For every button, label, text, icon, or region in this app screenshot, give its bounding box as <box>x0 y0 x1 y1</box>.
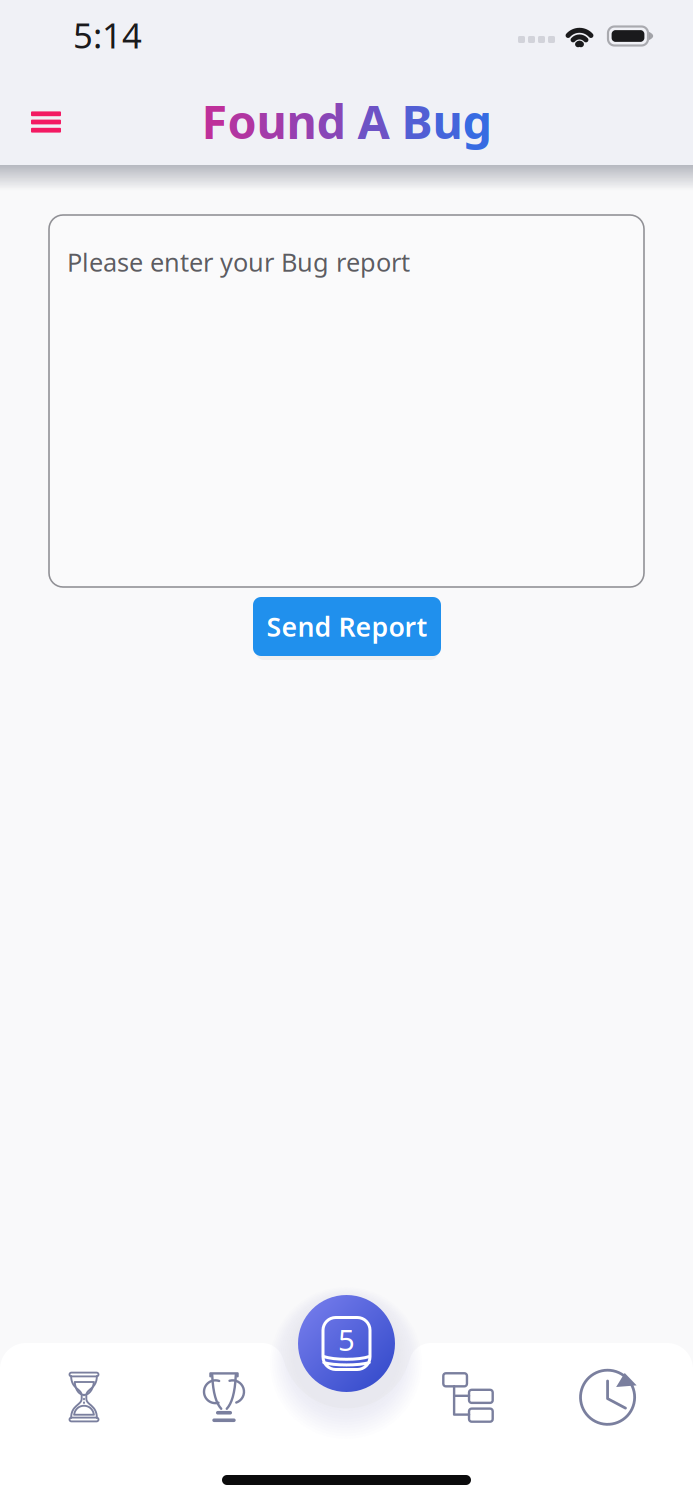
button[interactable]: Send Report <box>253 597 441 656</box>
button[interactable]: Timer <box>49 1366 119 1428</box>
staticText: B <box>401 90 432 152</box>
button[interactable]: Achievements <box>189 1366 259 1428</box>
button[interactable]: Menu <box>8 75 84 160</box>
staticText: g <box>462 90 491 152</box>
staticText: u <box>256 90 286 152</box>
staticText: o <box>227 90 256 152</box>
staticText: F <box>201 90 227 152</box>
staticText: u <box>432 90 462 152</box>
staticText: A <box>357 90 389 152</box>
button[interactable]: Categories <box>433 1366 503 1428</box>
staticText: Send Report <box>266 609 427 644</box>
staticText: n <box>286 90 316 152</box>
staticText: 5 <box>338 1320 355 1359</box>
staticText: d <box>316 90 345 152</box>
staticText: 5:14 <box>73 12 142 58</box>
button[interactable]: History <box>574 1366 644 1428</box>
staticText: Please enter your Bug report <box>67 245 410 279</box>
button[interactable]: Cards <box>298 1295 395 1392</box>
